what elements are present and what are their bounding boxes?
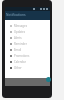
button[interactable]: Notifications (5, 11, 50, 20)
staticText: Email (14, 48, 22, 52)
staticText: Promotions (14, 54, 30, 58)
staticText: Notifications (6, 13, 26, 17)
staticText: Alerts (14, 36, 22, 40)
button[interactable]: Other (5, 65, 50, 71)
button[interactable]: Messages (5, 23, 50, 29)
button[interactable]: Email (5, 47, 50, 53)
staticText: Other (14, 66, 22, 70)
button[interactable]: Calendar (5, 59, 50, 65)
button[interactable]: Updates (5, 29, 50, 35)
staticText: Messages (14, 24, 27, 28)
button[interactable]: Reminder (5, 41, 50, 47)
button[interactable]: Alerts (5, 35, 50, 41)
button[interactable]: Promotions (5, 53, 50, 59)
staticText: Updates (14, 30, 25, 34)
staticText: Calendar (14, 60, 26, 64)
button[interactable]: Add (46, 77, 51, 82)
staticText: Reminder (14, 42, 27, 46)
